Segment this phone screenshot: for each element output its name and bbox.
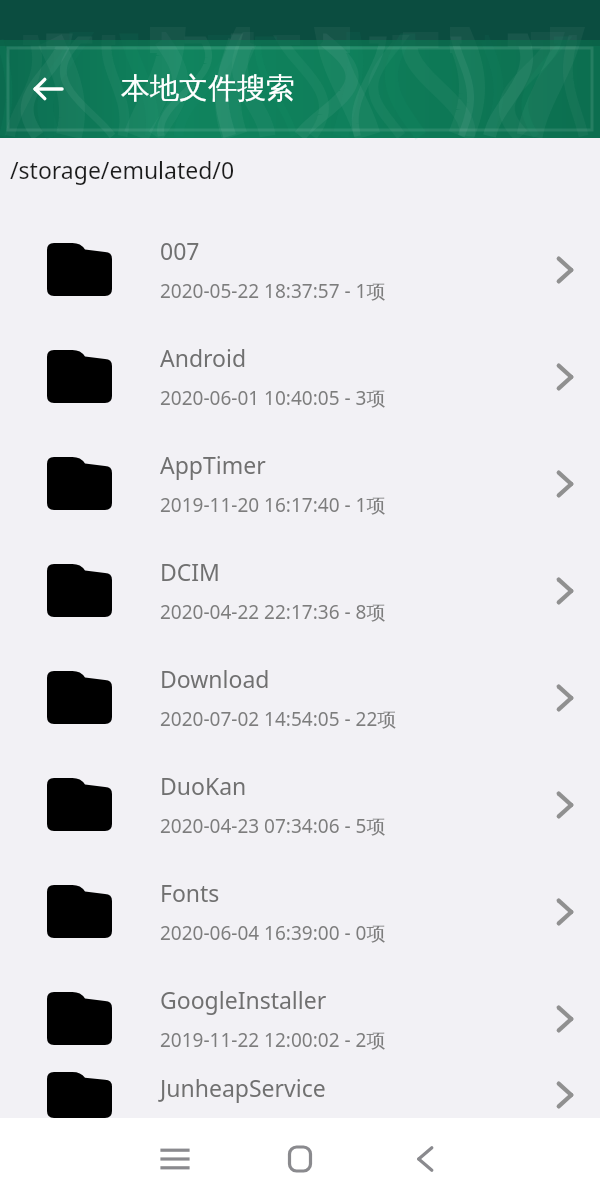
button[interactable]: 007 (0, 216, 600, 323)
button[interactable]: Back (22, 63, 74, 115)
button[interactable]: GoogleInstaller (0, 965, 600, 1072)
staticText: 2020-04-23 07:34:06 - 5项 (160, 813, 386, 839)
staticText: JunheapService (160, 1072, 326, 1103)
button[interactable]: Home (270, 1129, 330, 1189)
staticText: 2019-11-22 12:00:02 - 2项 (160, 1027, 386, 1053)
staticText: Fonts (160, 877, 220, 908)
staticText: 2020-06-01 10:40:05 - 3项 (160, 385, 386, 411)
staticText: Download (160, 663, 270, 694)
button[interactable]: Fonts (0, 858, 600, 965)
button[interactable]: Download (0, 644, 600, 751)
staticText: GoogleInstaller (160, 984, 327, 1015)
staticText: Android (160, 342, 247, 373)
staticText: 本地文件搜索 (121, 70, 295, 107)
button[interactable]: JunheapService (0, 1072, 600, 1118)
staticText: /storage/emulated/0 (10, 154, 235, 185)
staticText: 2020-05-22 18:37:57 - 1项 (160, 278, 386, 304)
button[interactable]: DuoKan (0, 751, 600, 858)
staticText: 2020-07-02 14:54:05 - 22项 (160, 706, 397, 732)
button[interactable]: Android (0, 323, 600, 430)
staticText: 2020-04-22 22:17:36 - 8项 (160, 599, 386, 625)
button[interactable]: DCIM (0, 537, 600, 644)
staticText: AppTimer (160, 449, 266, 480)
staticText: 2020-06-04 16:39:00 - 0项 (160, 920, 386, 946)
button[interactable]: AppTimer (0, 430, 600, 537)
staticText: DuoKan (160, 770, 247, 801)
staticText: 007 (160, 235, 200, 266)
staticText: 2019-11-20 16:17:40 - 1项 (160, 492, 386, 518)
button[interactable]: Recents (145, 1129, 205, 1189)
button[interactable]: Back (395, 1129, 455, 1189)
staticText: DCIM (160, 556, 220, 587)
